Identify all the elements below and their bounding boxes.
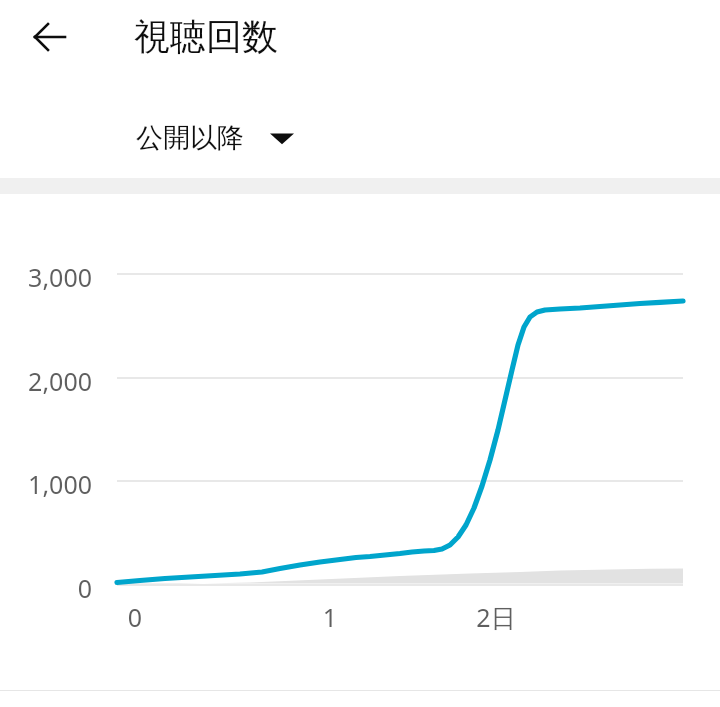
- button[interactable]: 公開以降: [136, 110, 294, 166]
- staticText: 公開以降: [136, 121, 244, 155]
- staticText: 0: [0, 571, 92, 605]
- staticText: 0: [105, 600, 165, 634]
- staticText: 1: [300, 600, 360, 634]
- staticText: 2,000: [0, 364, 92, 398]
- staticText: 3,000: [0, 260, 92, 294]
- staticText: 2日: [466, 600, 526, 634]
- staticText: 視聴回数: [134, 14, 278, 59]
- button[interactable]: 戻る: [20, 7, 80, 67]
- staticText: 1,000: [0, 467, 92, 501]
